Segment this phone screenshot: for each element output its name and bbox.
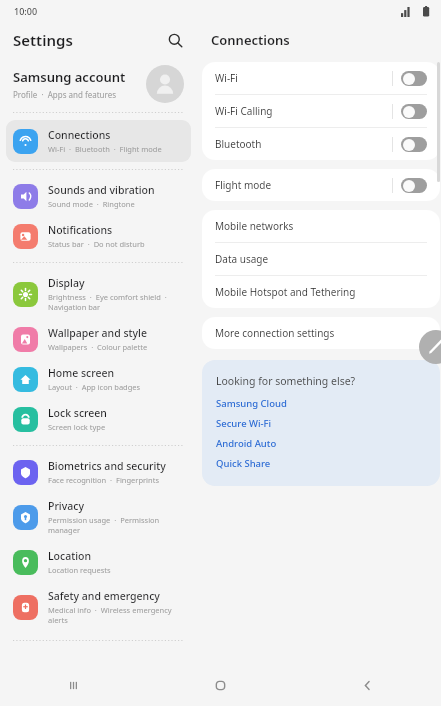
staticText: Connections [48,128,111,142]
staticText: Wallpapers · Colour palette [48,342,148,352]
button[interactable]: Biometrics and security [0,452,197,492]
button[interactable]: Safety and emergency [0,582,197,632]
button[interactable]: Wi-Fi [202,62,440,94]
staticText: Face recognition · Fingerprints [48,475,159,485]
staticText: Samsung Cloud [216,397,287,410]
button[interactable] [401,137,427,152]
button[interactable] [401,71,427,86]
staticText: Settings [13,30,73,50]
button[interactable]: Samsung account [0,58,197,110]
staticText: Wi-Fi [215,71,392,85]
button[interactable]: Recents [0,664,147,706]
button[interactable]: Wi-Fi Calling [202,95,440,127]
button[interactable]: Privacy [0,492,197,542]
staticText: Data usage [215,252,269,266]
staticText: Wi-Fi Calling [215,104,392,118]
staticText: Mobile Hotspot and Tethering [215,285,356,299]
button[interactable]: Display [0,269,197,319]
staticText: Sounds and vibration [48,183,155,197]
button[interactable]: Mobile Hotspot and Tethering [202,276,440,308]
button[interactable]: Mobile networks [202,210,440,242]
staticText: More connection settings [215,326,335,340]
staticText: Wallpaper and style [48,326,147,340]
button[interactable]: Samsung Cloud [216,397,287,410]
button[interactable]: More connection settings [202,317,440,349]
button[interactable]: Wallpaper and style [0,319,197,359]
button[interactable]: Search [161,26,189,54]
staticText: Safety and emergency [48,589,160,603]
button[interactable]: Connections [6,120,191,162]
button[interactable]: Quick Share [216,457,271,470]
button[interactable] [401,178,427,193]
button[interactable]: Home [147,664,294,706]
button[interactable]: Bluetooth [202,128,440,160]
staticText: Quick Share [216,457,271,470]
button[interactable]: Sounds and vibration [0,176,197,216]
button[interactable]: Secure Wi-Fi [216,417,272,430]
button[interactable]: Location [0,542,197,582]
staticText: Mobile networks [215,219,294,233]
staticText: Medical info · Wireless emergency alerts [48,605,191,625]
staticText: Secure Wi-Fi [216,417,272,430]
staticText: Lock screen [48,406,107,420]
staticText: Biometrics and security [48,459,166,473]
button[interactable]: Data usage [202,243,440,275]
staticText: Screen lock type [48,422,106,432]
staticText: Bluetooth [215,137,392,151]
staticText: Profile · Apps and features [13,89,117,100]
staticText: Samsung account [13,68,126,86]
staticText: Brightness · Eye comfort shield · Naviga… [48,292,167,312]
staticText: Status bar · Do not disturb [48,239,145,249]
staticText: Privacy [48,499,84,513]
button[interactable]: Home screen [0,359,197,399]
button[interactable]: Back [294,664,441,706]
button[interactable]: Flight mode [202,169,440,201]
staticText: Flight mode [215,178,392,192]
staticText: Permission usage · Permission manager [48,515,191,535]
staticText: Looking for something else? [216,374,356,388]
staticText: Wi-Fi · Bluetooth · Flight mode [48,144,162,154]
button[interactable]: Lock screen [0,399,197,439]
staticText: Location requests [48,565,111,575]
button[interactable]: Android Auto [216,437,277,450]
staticText: Display [48,276,85,290]
staticText: Notifications [48,223,113,237]
staticText: Connections [211,31,290,49]
staticText: Layout · App icon badges [48,382,141,392]
staticText: Sound mode · Ringtone [48,199,135,209]
button[interactable]: Edit [419,330,441,364]
staticText: Location [48,549,92,563]
staticText: 10:00 [14,5,38,17]
staticText: Android Auto [216,437,277,450]
button[interactable] [401,104,427,119]
staticText: Home screen [48,366,115,380]
button[interactable]: Notifications [0,216,197,256]
